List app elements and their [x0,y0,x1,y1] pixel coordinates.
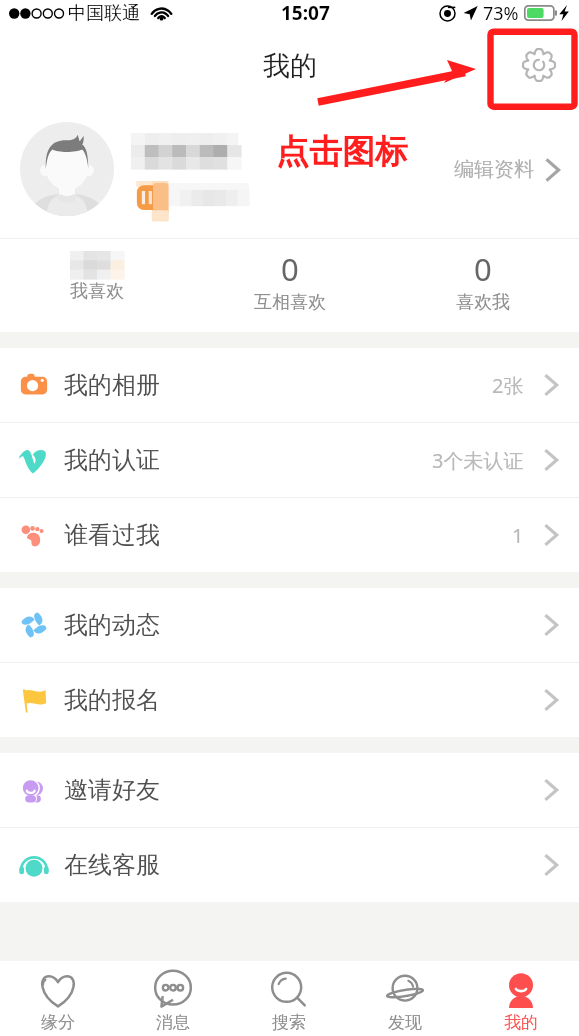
button[interactable]: 在线客服 [0,828,579,902]
staticText: 编辑资料 [454,157,534,182]
button[interactable]: 缘分 [0,961,115,1036]
button[interactable]: 邀请好友 [0,753,579,827]
staticText: 发现 [388,1012,422,1033]
button[interactable]: 我的 [463,961,579,1036]
staticText: 中国联通 [68,2,140,25]
button[interactable]: 我的动态 [0,588,579,662]
button[interactable]: 0 [386,239,579,332]
button[interactable]: 我的认证 [0,423,579,497]
staticText: 我的 [504,1012,538,1033]
staticText: 在线客服 [64,850,160,880]
staticText: 我的认证 [64,445,160,475]
button[interactable]: 我的报名 [0,663,579,737]
button[interactable]: 谁看过我 [0,498,579,572]
staticText: 1 [512,522,524,549]
staticText: 谁看过我 [64,520,160,550]
staticText: 15:07 [281,0,330,26]
button[interactable]: 编辑资料 [0,111,579,238]
button[interactable]: 我喜欢 [0,239,193,332]
button[interactable]: Settings [522,48,556,82]
staticText: 2张 [492,372,524,399]
staticText: 我喜欢 [70,280,124,303]
staticText: 73% [483,1,519,26]
staticText: 我的 [263,49,317,83]
staticText: 搜索 [272,1012,306,1033]
button[interactable]: 消息 [115,961,231,1036]
staticText: 0 [474,248,492,290]
staticText: 缘分 [41,1012,75,1033]
staticText: 喜欢我 [456,291,510,314]
button[interactable]: 发现 [347,961,463,1036]
staticText: 邀请好友 [64,775,160,805]
staticText: 消息 [156,1012,190,1033]
staticText: 0 [281,248,299,290]
button[interactable]: 我的相册 [0,348,579,422]
staticText: 点击图标 [276,131,408,173]
button[interactable]: 0 [193,239,386,332]
staticText: 互相喜欢 [254,291,326,314]
staticText: 我的动态 [64,610,160,640]
staticText: 3个未认证 [432,447,524,474]
button[interactable]: 搜索 [231,961,347,1036]
staticText: 我的相册 [64,370,160,400]
staticText: 我的报名 [64,685,160,715]
